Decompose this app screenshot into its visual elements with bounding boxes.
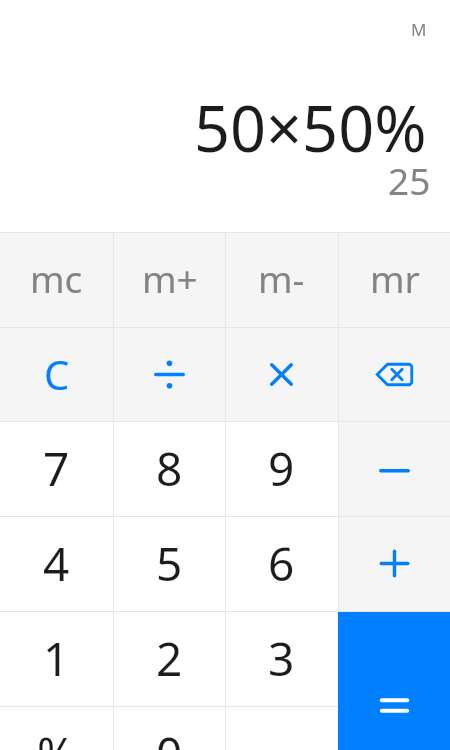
staticText: 5 xyxy=(156,532,183,595)
staticText: m- xyxy=(258,253,305,303)
button[interactable]: . xyxy=(225,706,338,750)
button[interactable]: Minus xyxy=(338,421,450,516)
button[interactable]: 8 xyxy=(113,421,226,516)
staticText: 2 xyxy=(156,627,183,690)
staticText: M xyxy=(411,18,427,41)
staticText: mr xyxy=(370,253,420,303)
staticText: 1 xyxy=(43,627,70,690)
staticText: 9 xyxy=(268,437,295,500)
button[interactable]: mr xyxy=(338,232,450,327)
button[interactable]: mc xyxy=(0,232,113,327)
staticText: 25 xyxy=(388,155,431,205)
button[interactable]: 9 xyxy=(225,421,338,516)
button[interactable]: Plus xyxy=(338,516,450,611)
staticText: 6 xyxy=(268,532,295,595)
button[interactable]: C xyxy=(0,327,113,422)
button[interactable]: m+ xyxy=(113,232,226,327)
button[interactable]: 0 xyxy=(113,706,226,750)
staticText: 8 xyxy=(156,437,183,500)
staticText: m+ xyxy=(142,253,198,303)
button[interactable]: % xyxy=(0,706,113,750)
button[interactable]: 4 xyxy=(0,516,113,611)
staticText: 3 xyxy=(268,627,295,690)
button[interactable]: Divide xyxy=(113,327,226,422)
button[interactable]: m- xyxy=(225,232,338,327)
button[interactable]: Backspace xyxy=(338,327,450,422)
button[interactable]: 5 xyxy=(113,516,226,611)
staticText: % xyxy=(37,722,76,750)
button[interactable]: 6 xyxy=(225,516,338,611)
button[interactable]: Equals xyxy=(338,611,450,750)
staticText: mc xyxy=(30,253,83,303)
button[interactable]: 2 xyxy=(113,611,226,706)
staticText: 4 xyxy=(43,532,70,595)
button[interactable]: 7 xyxy=(0,421,113,516)
staticText: C xyxy=(44,347,70,401)
staticText: 0 xyxy=(156,722,183,750)
button[interactable]: 1 xyxy=(0,611,113,706)
staticText: 50×50% xyxy=(194,85,427,171)
button[interactable]: 3 xyxy=(225,611,338,706)
staticText: 7 xyxy=(43,437,70,500)
button[interactable]: Multiply xyxy=(225,327,338,422)
